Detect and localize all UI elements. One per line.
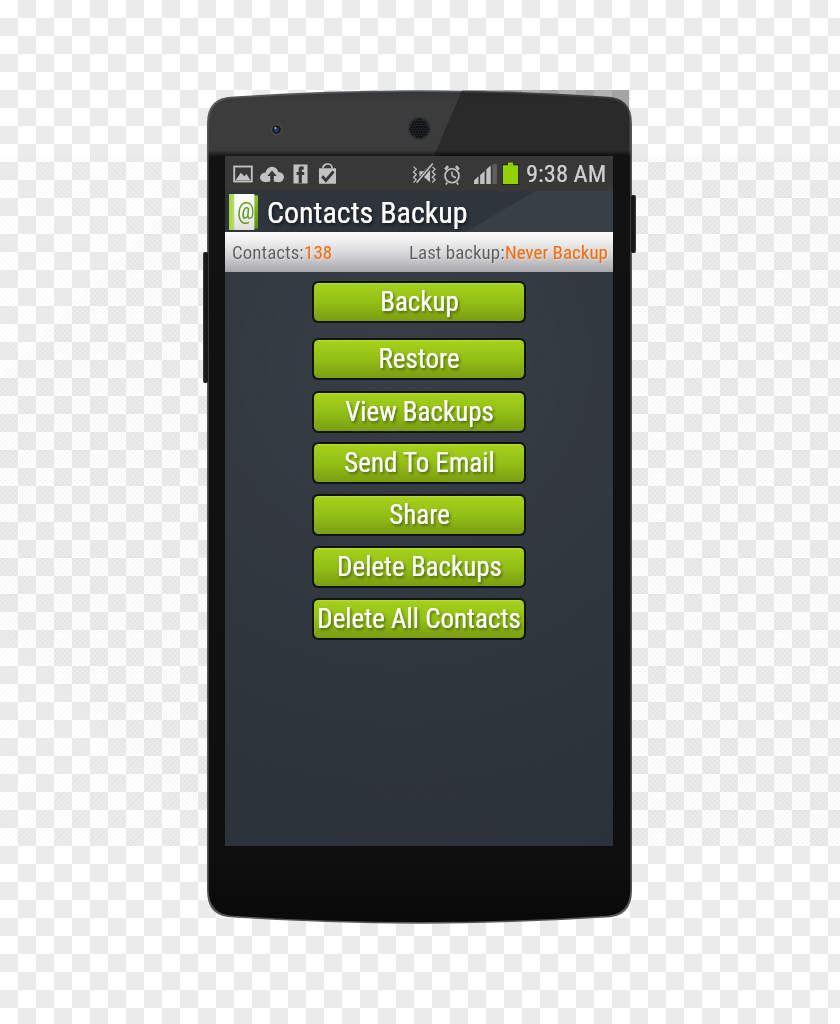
staticText: Contacts: [232, 241, 304, 263]
staticText: 9:38 AM [526, 159, 607, 188]
button[interactable]: Backup [314, 283, 524, 321]
button[interactable]: Delete All Contacts [314, 600, 524, 638]
staticText: Restore [378, 343, 460, 375]
staticText: Backup [380, 286, 459, 318]
staticText: Delete Backups [337, 551, 502, 583]
button[interactable]: Delete Backups [314, 548, 524, 586]
staticText: Delete All Contacts [317, 603, 521, 635]
button[interactable]: Share [314, 496, 524, 534]
staticText: Contacts Backup [267, 195, 468, 230]
staticText: Send To Email [344, 447, 495, 479]
staticText: 138 [304, 241, 333, 263]
staticText: Last backup: [409, 241, 505, 263]
staticText: View Backups [345, 396, 494, 428]
button[interactable]: Restore [314, 340, 524, 378]
button[interactable]: Send To Email [314, 444, 524, 482]
staticText: Share [389, 499, 450, 531]
staticText: @ [237, 198, 255, 225]
staticText: Never Backup [505, 241, 608, 263]
button[interactable]: View Backups [314, 393, 524, 431]
